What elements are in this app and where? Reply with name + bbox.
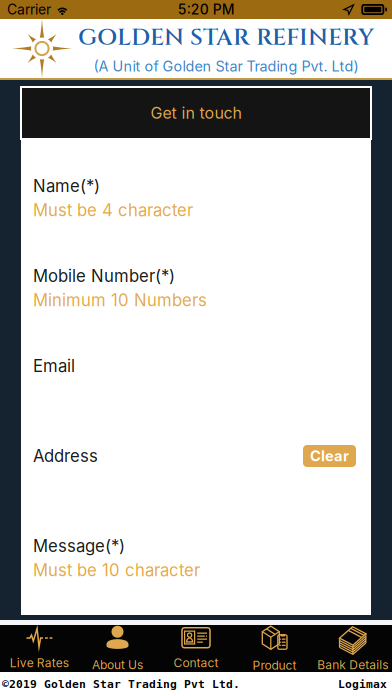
button[interactable]: Live Rates (0, 625, 78, 672)
staticText: (A Unit of Golden Star Trading Pvt. Ltd) (93, 57, 358, 75)
staticText: Get in touch (150, 103, 241, 123)
staticText: Product (252, 658, 296, 673)
staticText: Address (33, 446, 98, 466)
staticText: Bank Details (317, 658, 388, 672)
button[interactable]: Bank Details (314, 625, 392, 672)
button[interactable]: About Us (78, 625, 157, 672)
staticText: Name(*) (33, 176, 100, 196)
staticText: ©2019 Golden Star Trading Pvt Ltd. (2, 677, 240, 691)
staticText: Must be 10 character (33, 560, 200, 580)
staticText: Email (33, 356, 75, 376)
staticText: Mobile Number(*) (33, 266, 175, 286)
staticText: Clear (310, 447, 349, 465)
staticText: About Us (92, 658, 143, 672)
staticText: GOLDEN STAR REFINERY (78, 22, 374, 54)
staticText: Logimax (338, 677, 387, 691)
staticText: Minimum 10 Numbers (33, 290, 207, 310)
staticText: Message(*) (33, 536, 125, 556)
button[interactable]: Contact (157, 625, 235, 672)
button[interactable]: Product (235, 625, 314, 672)
staticText: Live Rates (10, 656, 69, 670)
staticText: 5:20 PM (178, 1, 235, 18)
staticText: Carrier (7, 1, 51, 18)
button[interactable]: Clear (303, 445, 356, 467)
staticText: Contact (173, 656, 218, 670)
staticText: Must be 4 character (33, 200, 193, 220)
